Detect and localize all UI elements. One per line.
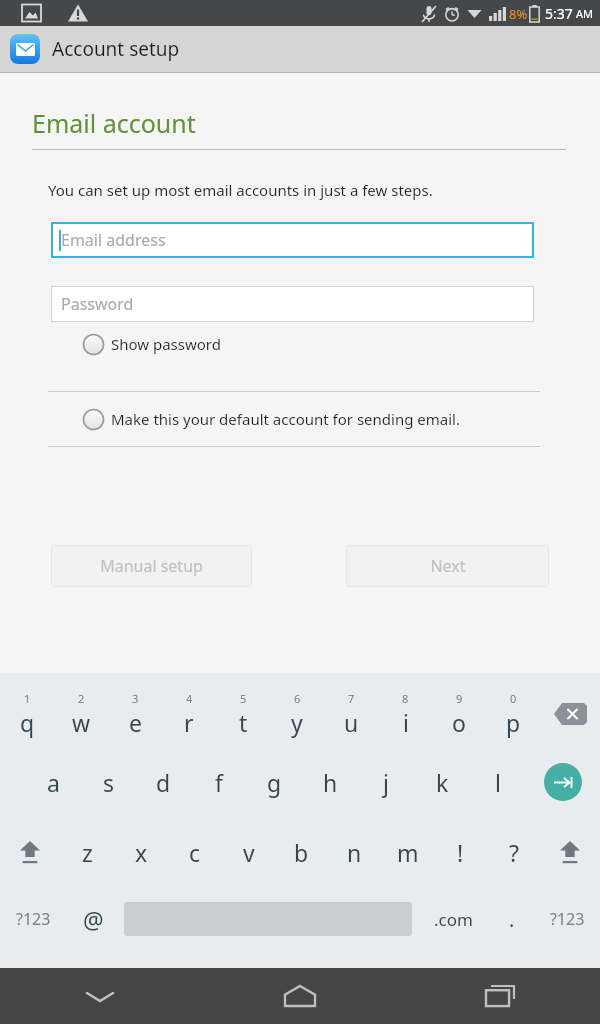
staticText: Show password — [111, 334, 221, 354]
staticText: v — [243, 837, 255, 868]
button[interactable]: f — [191, 747, 246, 817]
staticText: k — [436, 767, 449, 798]
staticText: 3 — [132, 691, 139, 706]
button[interactable]: x — [114, 817, 168, 887]
button[interactable]: Shift — [540, 817, 600, 887]
button[interactable]: v — [222, 817, 275, 887]
button[interactable]: m — [381, 817, 434, 887]
staticText: You can set up most email accounts in ju… — [48, 180, 433, 200]
staticText: Email address — [61, 229, 166, 251]
staticText: 8 — [402, 691, 409, 706]
button[interactable]: a — [26, 747, 81, 817]
button[interactable]: 4 — [162, 681, 216, 747]
button[interactable]: b — [275, 817, 328, 887]
staticText: Make this your default account for sendi… — [111, 409, 460, 429]
button[interactable]: Home — [200, 968, 400, 1024]
staticText: ? — [509, 837, 519, 868]
button[interactable]: Email address — [51, 222, 534, 258]
button[interactable]: ? — [487, 817, 540, 887]
staticText: 0 — [510, 691, 517, 706]
button[interactable]: 1 — [0, 681, 54, 747]
button[interactable]: Recent apps — [400, 968, 600, 1024]
button[interactable]: ?123 — [0, 887, 66, 951]
staticText: n — [347, 837, 362, 868]
staticText: 4 — [186, 691, 193, 706]
staticText: 1 — [24, 691, 31, 706]
button[interactable]: Password — [51, 286, 534, 322]
button[interactable]: d — [136, 747, 191, 817]
button[interactable]: Manual setup — [51, 545, 252, 587]
button[interactable]: 7 — [324, 681, 378, 747]
staticText: 8% — [509, 5, 528, 23]
staticText: 6 — [294, 691, 301, 706]
staticText: m — [397, 837, 419, 868]
button[interactable]: Next field — [526, 747, 600, 817]
button[interactable]: j — [358, 747, 414, 817]
staticText: t — [239, 707, 248, 738]
button[interactable]: @ — [66, 887, 120, 951]
button[interactable]: Hide keyboard — [0, 968, 200, 1024]
button[interactable]: 3 — [108, 681, 162, 747]
staticText: b — [294, 837, 309, 868]
staticText: AM — [576, 6, 594, 21]
staticText: d — [156, 767, 171, 798]
staticText: @ — [83, 904, 104, 935]
staticText: e — [129, 707, 142, 738]
staticText: Account setup — [52, 36, 180, 62]
button[interactable]: g — [246, 747, 302, 817]
button[interactable]: s — [81, 747, 136, 817]
staticText: ! — [457, 837, 464, 868]
staticText: Manual setup — [100, 555, 203, 577]
staticText: ?123 — [550, 908, 585, 930]
staticText: q — [20, 707, 35, 738]
staticText: h — [323, 767, 338, 798]
staticText: w — [72, 707, 91, 738]
button[interactable]: 0 — [486, 681, 540, 747]
button[interactable]: ! — [434, 817, 487, 887]
staticText: . — [509, 906, 515, 933]
staticText: g — [267, 767, 282, 798]
staticText: r — [184, 707, 194, 738]
button[interactable]: . — [490, 887, 534, 951]
button[interactable]: 2 — [54, 681, 108, 747]
staticText: s — [103, 767, 115, 798]
staticText: f — [215, 767, 223, 798]
button[interactable]: Make this your default account for sendi… — [82, 392, 460, 446]
staticText: 5 — [240, 691, 247, 706]
staticText: y — [291, 707, 303, 738]
staticText: ?123 — [16, 908, 51, 930]
button[interactable]: Shift — [0, 817, 60, 887]
button[interactable]: z — [60, 817, 114, 887]
button[interactable]: .com — [416, 887, 490, 951]
staticText: a — [47, 767, 60, 798]
button[interactable]: c — [168, 817, 222, 887]
button[interactable]: 9 — [432, 681, 486, 747]
staticText: p — [506, 707, 521, 738]
staticText: z — [82, 837, 93, 868]
staticText: i — [403, 707, 409, 738]
staticText: .com — [434, 908, 473, 931]
button[interactable]: ?123 — [534, 887, 600, 951]
staticText: 5:37 — [545, 4, 573, 23]
button[interactable]: Backspace — [540, 681, 600, 747]
staticText: Password — [61, 293, 134, 315]
button[interactable]: n — [328, 817, 381, 887]
button[interactable]: 8 — [378, 681, 432, 747]
button[interactable]: l — [470, 747, 526, 817]
staticText: x — [135, 837, 148, 868]
staticText: Next — [430, 555, 466, 577]
button[interactable]: k — [414, 747, 470, 817]
button[interactable]: 6 — [270, 681, 324, 747]
staticText: 9 — [456, 691, 463, 706]
button[interactable]: h — [302, 747, 358, 817]
staticText: 7 — [348, 691, 355, 706]
staticText: l — [495, 767, 501, 798]
button[interactable]: Account setup — [0, 26, 600, 72]
staticText: 2 — [78, 691, 85, 706]
button[interactable]: Next — [346, 545, 549, 587]
staticText: Email account — [32, 106, 196, 140]
button[interactable]: Show password — [82, 327, 221, 361]
button[interactable]: 5 — [216, 681, 270, 747]
staticText: o — [452, 707, 466, 738]
